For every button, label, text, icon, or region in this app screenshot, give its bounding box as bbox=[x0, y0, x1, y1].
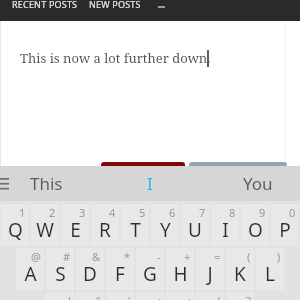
staticText: G bbox=[143, 261, 157, 287]
staticText: 8 bbox=[229, 205, 236, 220]
staticText: E bbox=[70, 217, 81, 243]
staticText: Y bbox=[160, 217, 171, 243]
staticText: 3 bbox=[79, 205, 86, 220]
staticText: 4 bbox=[109, 205, 116, 220]
button[interactable]: NEW POSTS bbox=[89, 0, 141, 21]
button[interactable]: ; bbox=[166, 292, 194, 300]
staticText: ) bbox=[277, 249, 281, 264]
staticText: 7 bbox=[199, 205, 206, 220]
button[interactable]: ' bbox=[106, 292, 134, 300]
staticText: You bbox=[243, 172, 273, 195]
button[interactable]: * bbox=[106, 248, 134, 290]
staticText: 0 bbox=[289, 205, 296, 220]
staticText: L bbox=[265, 261, 275, 287]
button[interactable]: 5 bbox=[121, 204, 149, 246]
button[interactable]: This bbox=[10, 166, 82, 201]
button[interactable]: : bbox=[136, 292, 164, 300]
staticText: ! bbox=[68, 293, 71, 300]
staticText: 1 bbox=[19, 205, 26, 220]
button[interactable]: " bbox=[76, 292, 104, 300]
button[interactable]: - bbox=[136, 248, 164, 290]
button[interactable]: ) bbox=[256, 248, 284, 290]
button[interactable]: ! bbox=[46, 292, 74, 300]
staticText: = bbox=[214, 249, 221, 264]
staticText: RECENT POSTS bbox=[12, 0, 78, 10]
staticText: W bbox=[36, 217, 54, 243]
button[interactable]: 2 bbox=[31, 204, 59, 246]
button[interactable]: ( bbox=[226, 248, 254, 290]
staticText: # bbox=[63, 249, 71, 264]
button[interactable]: # bbox=[46, 248, 74, 290]
button[interactable]: I bbox=[110, 166, 190, 201]
staticText: * bbox=[124, 249, 131, 264]
button[interactable]: 6 bbox=[151, 204, 179, 246]
staticText: - bbox=[157, 249, 161, 264]
button[interactable]: + bbox=[166, 248, 194, 290]
staticText: O bbox=[248, 217, 263, 243]
button[interactable]: 0 bbox=[271, 204, 299, 246]
staticText: A bbox=[24, 261, 37, 287]
staticText: ' bbox=[128, 293, 131, 300]
staticText: ( bbox=[247, 249, 251, 264]
staticText: @ bbox=[31, 249, 41, 264]
staticText: This is now a lot further down. bbox=[20, 49, 211, 67]
staticText: Q bbox=[8, 217, 23, 243]
staticText: D bbox=[83, 261, 97, 287]
button[interactable]: 9 bbox=[241, 204, 269, 246]
staticText: P bbox=[279, 217, 291, 243]
button[interactable]: / bbox=[196, 292, 224, 300]
button[interactable]: RECENT POSTS bbox=[12, 0, 78, 21]
staticText: S bbox=[55, 261, 66, 287]
button[interactable]: @ bbox=[16, 248, 44, 290]
button[interactable]: ? bbox=[226, 292, 254, 300]
staticText: T bbox=[130, 217, 141, 243]
button[interactable]: 4 bbox=[91, 204, 119, 246]
staticText: + bbox=[184, 249, 191, 264]
staticText: : bbox=[158, 293, 161, 300]
staticText: ? bbox=[246, 293, 251, 300]
button[interactable]: & bbox=[76, 248, 104, 290]
staticText: K bbox=[234, 261, 246, 287]
button[interactable]: = bbox=[196, 248, 224, 290]
staticText: I bbox=[222, 217, 229, 243]
staticText: " bbox=[96, 293, 101, 300]
staticText: 6 bbox=[169, 205, 176, 220]
staticText: This bbox=[30, 172, 63, 195]
staticText: & bbox=[92, 249, 101, 264]
button[interactable]: Keyboard menu bbox=[0, 178, 9, 190]
button[interactable]: 1 bbox=[1, 204, 29, 246]
button[interactable]: 3 bbox=[61, 204, 89, 246]
staticText: / bbox=[216, 293, 221, 300]
button[interactable]: 7 bbox=[181, 204, 209, 246]
staticText: 5 bbox=[139, 205, 146, 220]
staticText: I bbox=[147, 172, 153, 195]
staticText: U bbox=[188, 217, 202, 243]
button[interactable]: More tabs bbox=[152, 0, 172, 21]
staticText: NEW POSTS bbox=[89, 0, 141, 10]
staticText: 2 bbox=[49, 205, 56, 220]
button[interactable] bbox=[189, 162, 287, 167]
staticText: H bbox=[173, 261, 188, 287]
staticText: ; bbox=[188, 293, 191, 300]
button[interactable] bbox=[101, 162, 185, 168]
staticText: R bbox=[99, 217, 111, 243]
button[interactable]: You bbox=[215, 166, 300, 201]
staticText: F bbox=[115, 261, 125, 287]
staticText: J bbox=[207, 261, 213, 287]
button[interactable]: 8 bbox=[211, 204, 239, 246]
staticText: 9 bbox=[259, 205, 266, 220]
